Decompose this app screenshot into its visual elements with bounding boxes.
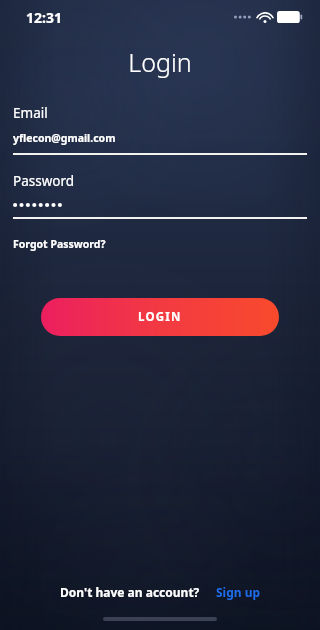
button[interactable]: LOGIN: [41, 298, 279, 336]
staticText: Email: [13, 104, 48, 122]
other: Home indicator: [103, 617, 217, 621]
button[interactable]: Email: [13, 104, 307, 155]
staticText: Password: [13, 172, 75, 190]
staticText: LOGIN: [138, 309, 182, 325]
staticText: 12:31: [26, 8, 62, 27]
button[interactable]: Password: [13, 172, 307, 219]
staticText: Login: [0, 45, 320, 79]
button[interactable]: Forgot Password?: [13, 237, 106, 251]
button[interactable]: Sign up: [216, 584, 261, 600]
staticText: Don't have an account?: [60, 584, 200, 600]
staticText: Forgot Password?: [13, 237, 106, 251]
staticText: yflecon@gmail.com: [13, 131, 116, 145]
staticText: Sign up: [216, 584, 261, 600]
